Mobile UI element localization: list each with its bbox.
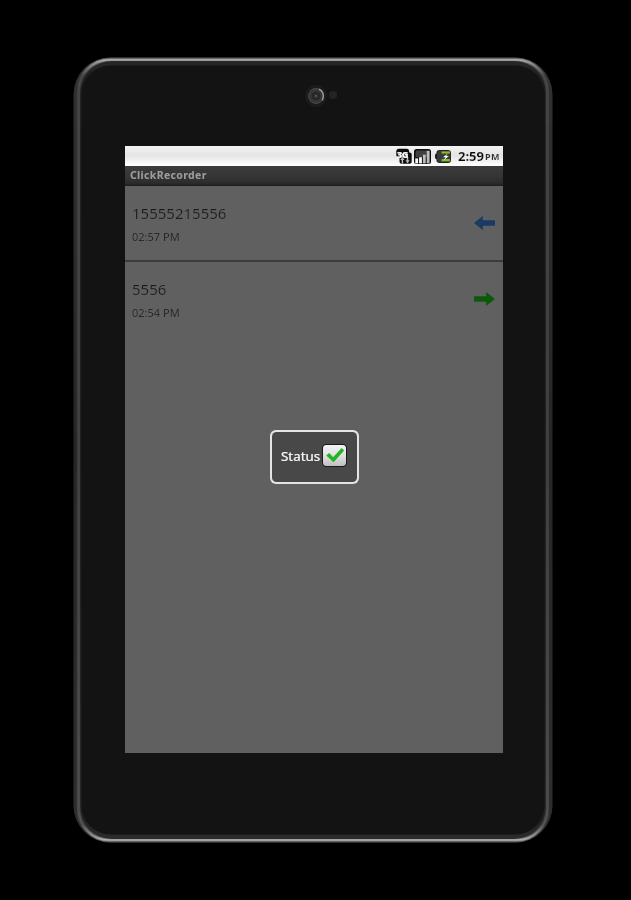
staticText: 3G — [397, 148, 409, 160]
button[interactable]: 5556 — [125, 262, 503, 336]
staticText: 02:54 PM — [132, 305, 180, 320]
staticText: ClickRecorder — [130, 168, 207, 182]
staticText: PM — [485, 150, 500, 162]
staticText: 15555215556 — [132, 203, 227, 223]
staticText: 5556 — [132, 279, 167, 299]
button[interactable]: Status — [272, 432, 357, 482]
button[interactable]: 15555215556 — [125, 186, 503, 260]
other: Camera — [304, 84, 328, 108]
staticText: 2:59 — [458, 147, 484, 165]
staticText: Status — [281, 447, 321, 465]
staticText: 02:57 PM — [132, 229, 180, 244]
